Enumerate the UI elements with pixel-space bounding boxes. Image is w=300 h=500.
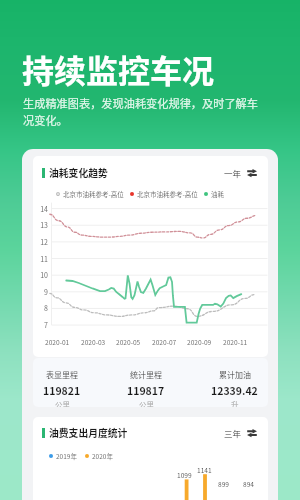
staticText: 1099: [177, 470, 192, 480]
staticText: 14: [33, 204, 48, 214]
staticText: 10: [33, 270, 48, 280]
staticText: 2020-03: [81, 337, 106, 347]
staticText: 三年: [224, 427, 242, 439]
staticText: 2020-01: [45, 337, 70, 347]
staticText: 8: [33, 303, 48, 313]
staticText: 2019年: [56, 451, 77, 460]
other: Switch range: [247, 168, 257, 178]
staticText: 北京市油耗参考-高位: [63, 189, 124, 198]
button[interactable]: 表显里程: [43, 369, 81, 407]
staticText: 累计加油: [219, 369, 251, 381]
staticText: 1141: [197, 465, 212, 475]
staticText: 9: [33, 287, 48, 297]
staticText: 11: [33, 254, 48, 264]
staticText: 2020-05: [116, 337, 141, 347]
staticText: 12: [33, 237, 48, 247]
other: Switch range: [247, 428, 257, 438]
staticText: 2020年: [92, 451, 113, 460]
staticText: 894: [243, 479, 254, 489]
staticText: 12339.42: [211, 383, 258, 398]
button[interactable]: 统计里程: [127, 369, 165, 407]
staticText: 2020-09: [187, 337, 212, 347]
staticText: 持续监控车况: [22, 46, 215, 92]
staticText: 油耗变化趋势: [49, 166, 108, 180]
button[interactable]: 三年: [224, 424, 257, 442]
staticText: 公里: [139, 399, 154, 407]
staticText: 2020-07: [152, 337, 177, 347]
staticText: 北京市油耗参考-高位: [137, 189, 198, 198]
staticText: 2020-11: [223, 337, 248, 347]
staticText: 升: [231, 399, 239, 407]
staticText: 7: [33, 320, 48, 330]
staticText: 899: [218, 479, 229, 489]
staticText: 油费支出月度统计: [49, 426, 128, 440]
staticText: 119817: [127, 383, 165, 398]
staticText: 表显里程: [46, 369, 78, 381]
staticText: 一年: [224, 167, 242, 179]
staticText: 统计里程: [130, 369, 162, 381]
button[interactable]: 累计加油: [211, 369, 258, 407]
staticText: 生成精准图表，发现油耗变化规律，及时了解车况变化。: [23, 95, 259, 128]
staticText: 公里: [55, 399, 70, 407]
staticText: 119821: [43, 383, 81, 398]
staticText: 13: [33, 220, 48, 230]
button[interactable]: 一年: [224, 164, 257, 182]
staticText: 油耗: [211, 189, 224, 198]
